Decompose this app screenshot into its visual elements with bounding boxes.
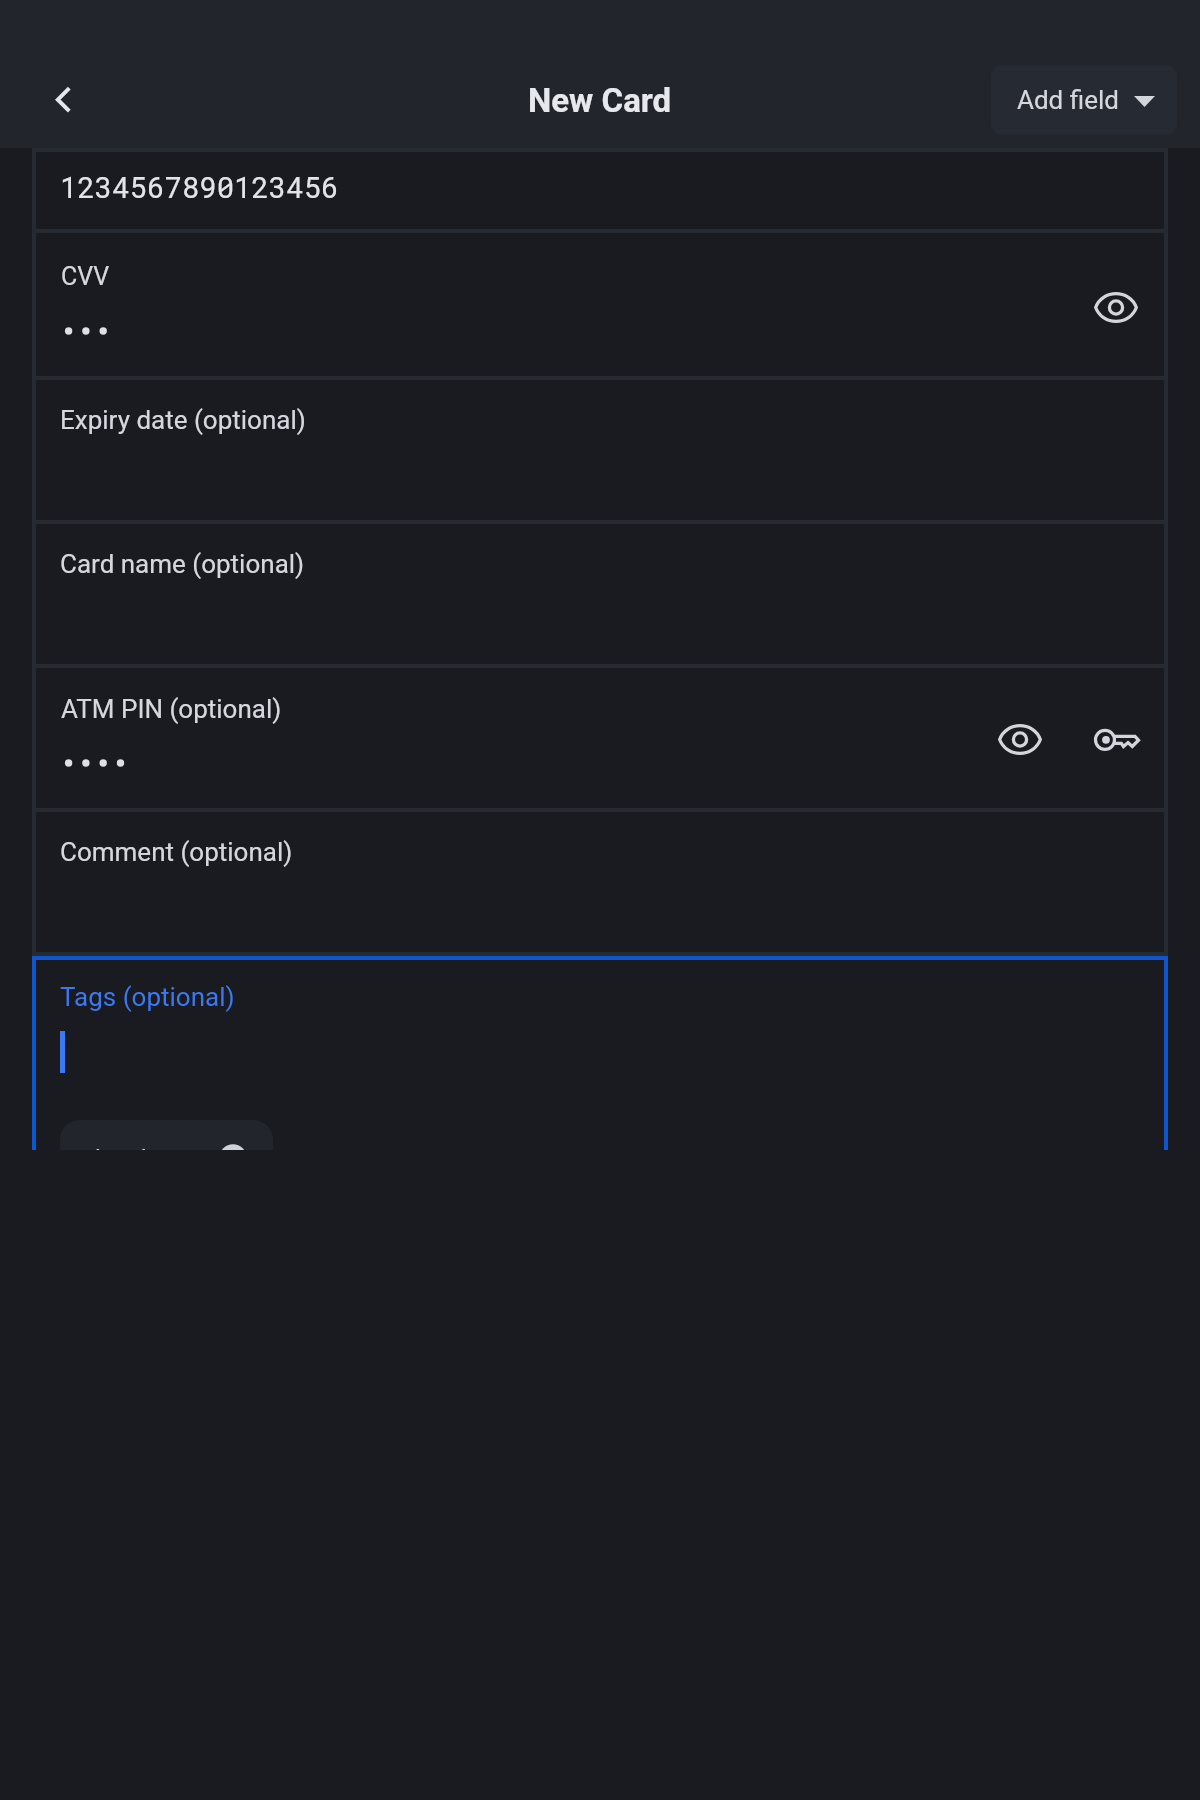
staticText: Comment (optional) (60, 837, 293, 867)
button[interactable]: Generate password (1078, 701, 1156, 779)
button[interactable]: CVV (32, 233, 1168, 376)
staticText: Tags (optional) (60, 982, 235, 1012)
button[interactable]: Show PIN (981, 700, 1059, 778)
button[interactable]: ll (32, 956, 1168, 1150)
button[interactable]: Add field (991, 65, 1177, 135)
button[interactable]: Show CVV (1077, 268, 1155, 346)
button[interactable]: Back (20, 55, 110, 145)
button[interactable]: 1234567890123456 (32, 152, 1168, 229)
staticText: Card name (optional) (60, 549, 305, 579)
button[interactable]: ATM PIN (optional) (32, 668, 1168, 808)
button[interactable]: ll (60, 1120, 273, 1150)
button[interactable]: Comment (optional) (32, 812, 1168, 952)
staticText: New Card (528, 81, 672, 120)
staticText: Add field (1017, 85, 1119, 115)
staticText: CVV (61, 262, 110, 291)
staticText: ll (95, 1145, 187, 1150)
button[interactable]: Card name (optional) (32, 524, 1168, 664)
staticText: ATM PIN (optional) (61, 694, 282, 724)
button[interactable]: Expiry date (optional) (32, 380, 1168, 520)
staticText: 1234567890123456 (60, 168, 339, 206)
staticText: Expiry date (optional) (60, 405, 306, 435)
